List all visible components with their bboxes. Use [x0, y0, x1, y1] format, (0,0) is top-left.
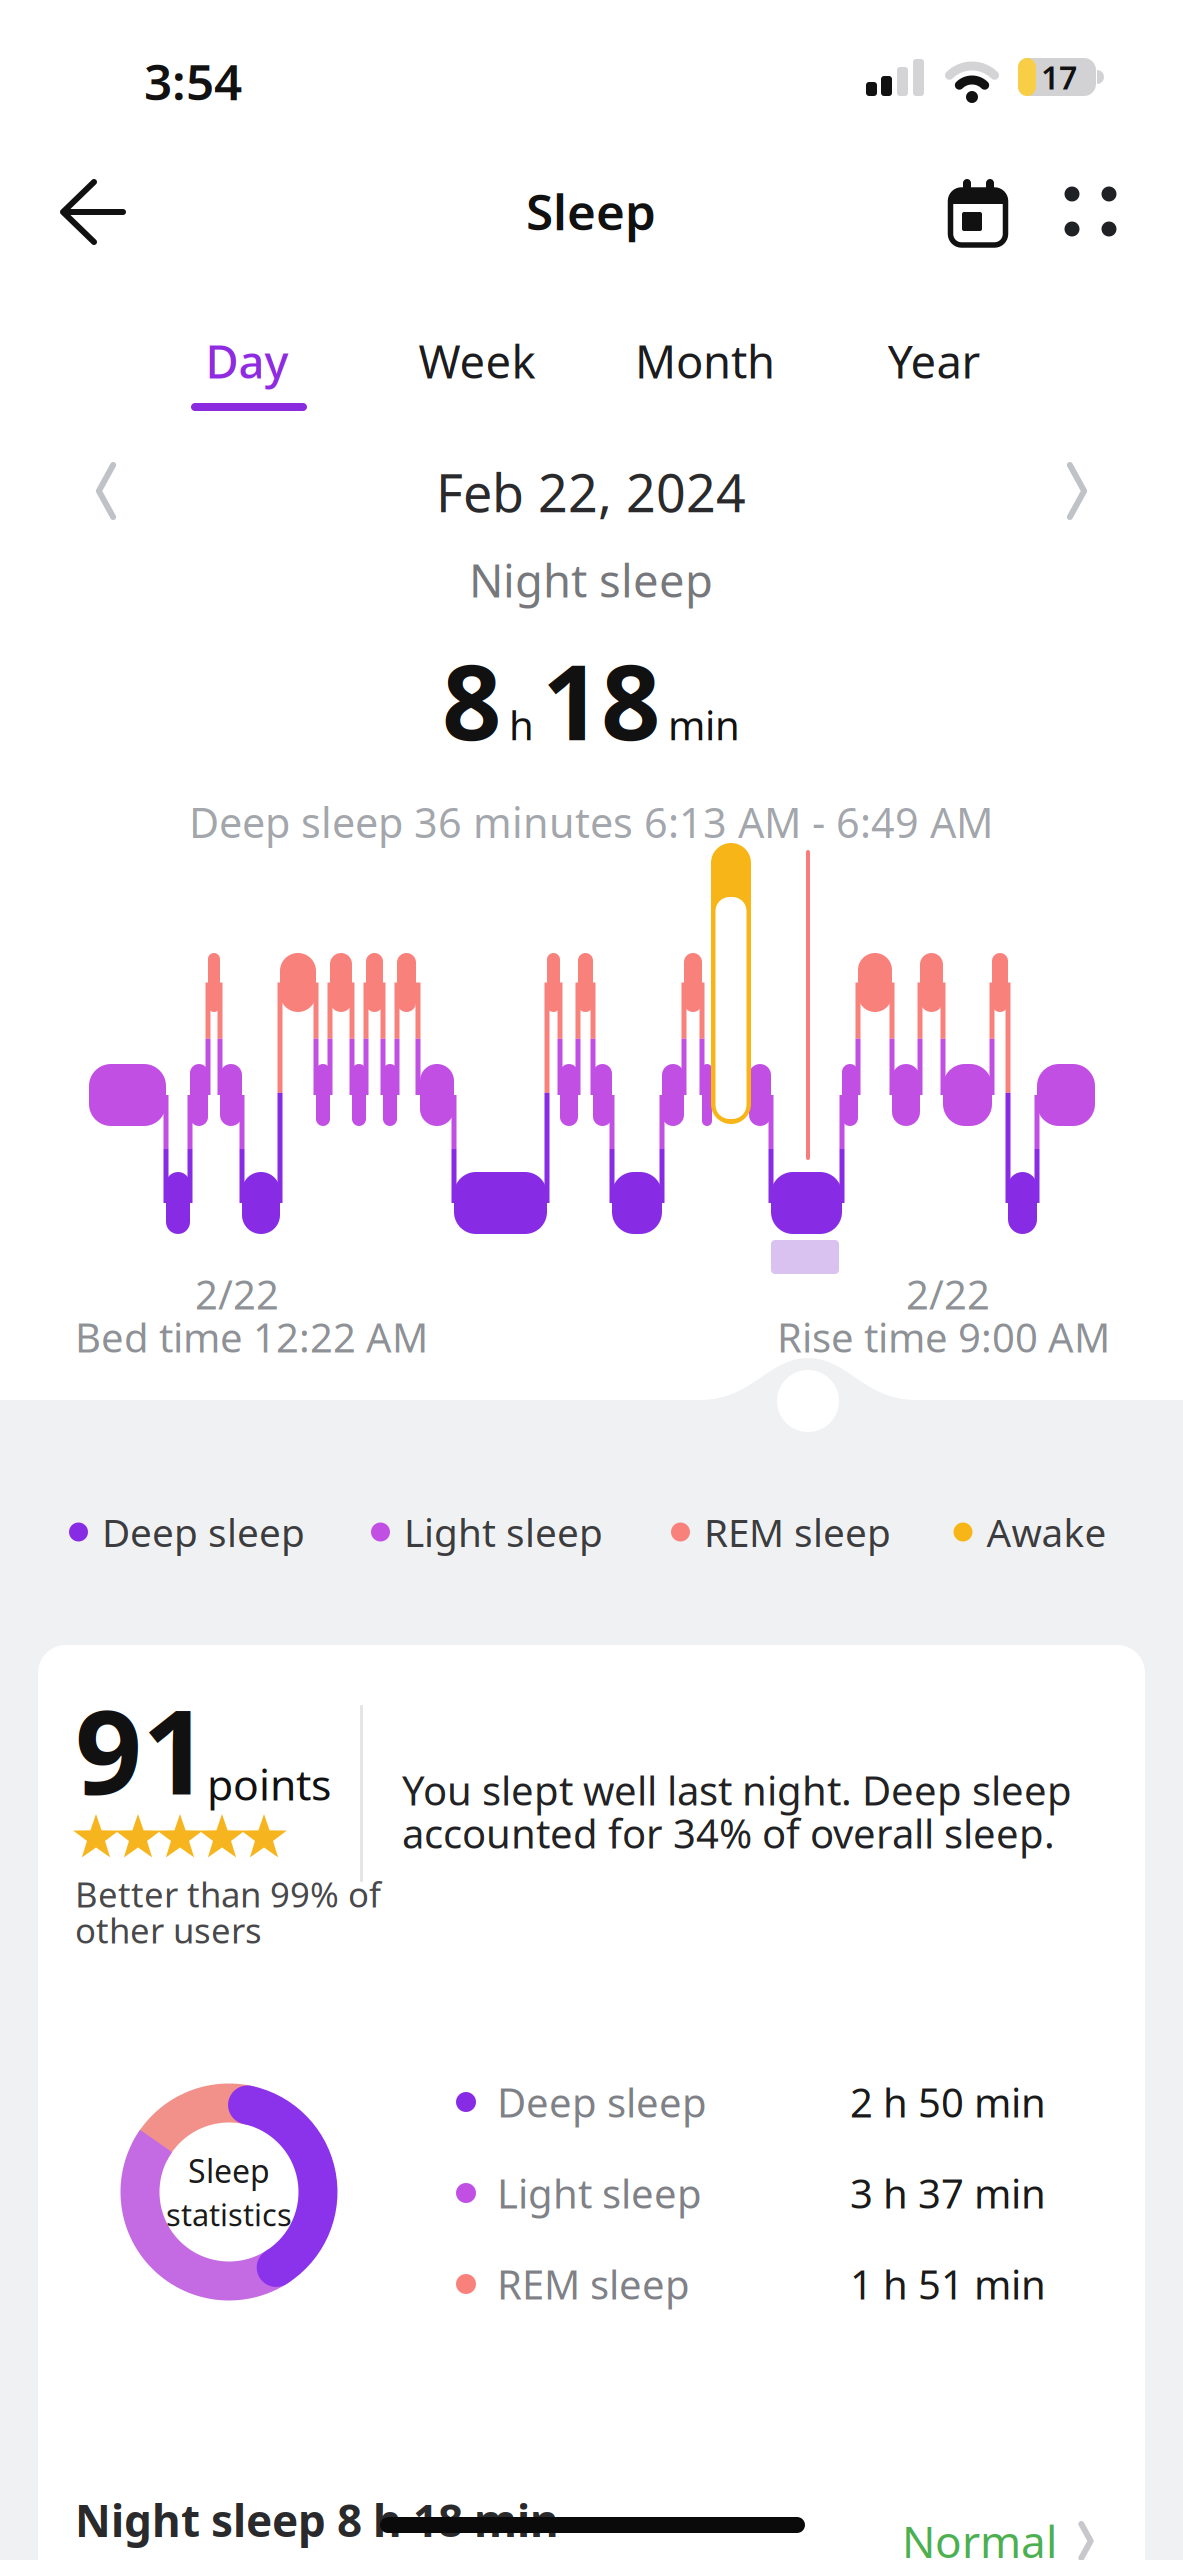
staticText: points	[207, 1756, 331, 1812]
staticText: 91	[75, 1671, 209, 1827]
button[interactable]: Previous day	[86, 459, 126, 523]
staticText: Awake	[986, 1506, 1106, 1558]
staticText: REM sleep	[704, 1506, 891, 1558]
staticText: Normal	[902, 2512, 1057, 2560]
staticText: REM sleep	[497, 2257, 690, 2310]
staticText: Year	[887, 331, 980, 391]
button[interactable]: Week	[418, 331, 535, 391]
staticText: 1 h 51 min	[850, 2257, 1046, 2310]
button[interactable]: Next day	[1057, 459, 1097, 523]
staticText: Night sleep 8 h 18 min	[75, 2491, 559, 2549]
staticText: Sleep	[188, 2149, 270, 2192]
staticText: 2/22	[195, 1267, 279, 1320]
staticText: Light sleep	[404, 1506, 603, 1558]
staticText: 17	[1041, 56, 1077, 98]
staticText: Week	[418, 331, 535, 391]
staticText: Light sleep	[497, 2166, 702, 2219]
staticText: 3:54	[144, 48, 242, 114]
staticText: h	[509, 698, 534, 751]
staticText: 18	[542, 631, 660, 769]
staticText: Feb 22, 2024	[436, 457, 746, 527]
button[interactable]: More options	[1064, 186, 1116, 236]
staticText: other users	[75, 1907, 262, 1953]
button[interactable]: Year	[887, 331, 980, 391]
staticText: 3 h 37 min	[850, 2166, 1046, 2219]
staticText: Deep sleep	[497, 2075, 707, 2128]
staticText: Bed time 12:22 AM	[75, 1310, 428, 1363]
button[interactable]: Back	[61, 181, 125, 243]
staticText: Deep sleep 36 minutes 6:13 AM - 6:49 AM	[189, 795, 993, 849]
button[interactable]: Day	[205, 331, 288, 391]
staticText: Month	[635, 331, 775, 391]
staticText: Deep sleep	[102, 1506, 305, 1558]
staticText: Day	[205, 331, 288, 391]
staticText: Rise time 9:00 AM	[777, 1310, 1110, 1363]
staticText: You slept well last night. Deep sleep	[402, 1763, 1072, 1816]
staticText: 2 h 50 min	[850, 2075, 1046, 2128]
staticText: Better than 99% of	[75, 1871, 381, 1917]
staticText: 8	[442, 631, 501, 769]
staticText: statistics	[166, 2194, 292, 2235]
staticText: 2/22	[906, 1267, 990, 1320]
staticText: accounted for 34% of overall sleep.	[402, 1806, 1055, 1859]
button[interactable]: Month	[635, 331, 775, 391]
button[interactable]: Night sleep 8 h 18 min	[56, 2464, 1126, 2560]
staticText: Night sleep	[469, 550, 713, 610]
staticText: min	[668, 698, 740, 751]
staticText: Sleep	[526, 178, 656, 244]
button[interactable]: Calendar	[948, 179, 1008, 245]
